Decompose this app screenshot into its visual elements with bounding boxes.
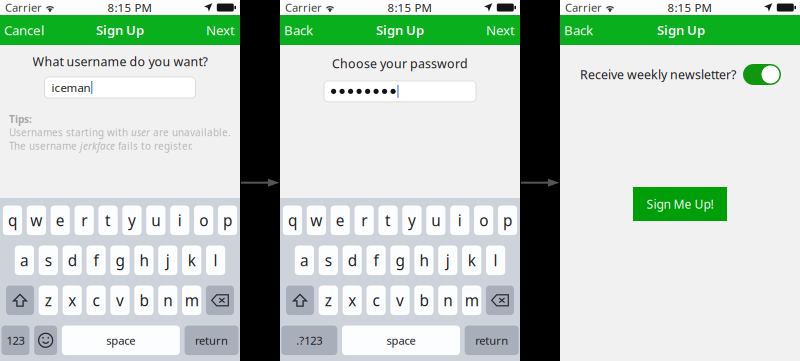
staticText: Next [486,21,515,39]
button[interactable]: s [39,245,58,275]
button[interactable]: v [390,285,410,315]
button[interactable]: 123 [1,325,29,355]
button[interactable]: space [62,325,180,355]
button[interactable]: w [27,205,46,235]
staticText: y [408,210,416,231]
button[interactable]: .?123 [281,325,337,355]
staticText: iceman [51,80,90,95]
button[interactable]: p [218,205,237,235]
button[interactable]: x [63,285,82,315]
button[interactable]: Delete [486,285,514,315]
button[interactable]: a [15,245,34,275]
staticText: Sign Up [657,21,705,39]
staticText: x [348,290,356,311]
button[interactable]: t [378,205,398,235]
button[interactable]: r [74,205,94,235]
staticText: The username [9,139,80,153]
staticText: n [443,290,452,311]
staticText: return [195,333,228,348]
button[interactable]: u [426,205,445,235]
button[interactable]: Sign Me Up! [633,187,727,221]
staticText: c [93,290,100,311]
button[interactable]: i [450,205,469,235]
staticText: i [458,210,462,231]
staticText: m [185,290,199,311]
staticText: Choose your password [332,55,468,72]
button[interactable]: m [182,285,201,315]
staticText: o [199,210,208,231]
button[interactable]: a [295,245,314,275]
staticText: f [94,250,99,271]
staticText: user [131,126,150,139]
button[interactable]: b [134,285,153,315]
button[interactable]: x [343,285,362,315]
button[interactable]: v [110,285,130,315]
button[interactable]: n [158,285,177,315]
staticText: Back [284,21,313,39]
button[interactable]: e [51,205,70,235]
button[interactable]: g [390,245,410,275]
staticText: r [361,210,367,231]
button[interactable]: q [283,205,302,235]
button[interactable]: b [414,285,433,315]
button[interactable]: p [498,205,517,235]
staticText: space [106,333,135,348]
button[interactable]: Cancel [0,15,52,45]
button[interactable]: return [465,325,519,355]
staticText: e [336,210,345,231]
staticText: n [163,290,172,311]
button[interactable]: z [39,285,58,315]
button[interactable]: m [462,285,481,315]
button[interactable]: f [366,245,386,275]
staticText: r [81,210,87,231]
staticText: b [419,290,428,311]
button[interactable]: d [63,245,82,275]
button[interactable]: r [355,205,374,235]
button[interactable]: g [110,245,130,275]
button[interactable]: j [438,245,457,275]
staticText: z [325,290,332,311]
staticText: Carrier [5,0,42,15]
button[interactable]: Next [198,15,240,45]
button[interactable]: Back [560,15,601,45]
button[interactable]: Receive weekly newsletter [743,64,781,85]
button[interactable]: Back [280,15,321,45]
button[interactable]: Shift [6,285,34,315]
button[interactable]: k [462,245,481,275]
button[interactable]: y [402,205,422,235]
staticText: t [385,210,391,231]
staticText: Carrier [285,0,322,15]
staticText: Sign Up [96,21,144,39]
button[interactable]: j [158,245,177,275]
button[interactable]: o [194,205,213,235]
button[interactable]: w [307,205,326,235]
button[interactable]: l [486,245,505,275]
staticText: w [30,210,42,231]
button[interactable]: t [98,205,118,235]
button[interactable]: e [331,205,350,235]
button[interactable]: y [122,205,142,235]
button[interactable]: space [342,325,460,355]
button[interactable]: Delete [206,285,234,315]
staticText: Cancel [4,21,44,39]
button[interactable]: c [366,285,386,315]
button[interactable]: Shift [286,285,314,315]
button[interactable]: l [206,245,225,275]
button[interactable]: return [185,325,239,355]
button[interactable]: s [319,245,338,275]
button[interactable]: n [438,285,457,315]
button[interactable]: c [86,285,106,315]
button[interactable]: z [319,285,338,315]
button[interactable]: i [170,205,189,235]
button[interactable]: d [343,245,362,275]
button[interactable]: f [86,245,106,275]
button[interactable]: q [3,205,22,235]
button[interactable]: h [414,245,433,275]
button[interactable]: o [474,205,493,235]
button[interactable]: Next [478,15,520,45]
button[interactable]: k [182,245,201,275]
button[interactable]: h [134,245,153,275]
staticText: a [300,250,309,271]
button[interactable]: u [146,205,165,235]
button[interactable]: Emoji keyboard [34,325,57,355]
